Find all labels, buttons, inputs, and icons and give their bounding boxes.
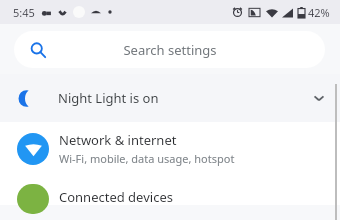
button[interactable]: Connected devices (0, 175, 340, 205)
button[interactable]: Night Light is on (0, 74, 340, 122)
button[interactable]: Search settings (14, 31, 325, 68)
staticText: Search settings (123, 41, 217, 59)
staticText: Wi-Fi, mobile, data usage, hotspot (59, 151, 235, 166)
staticText: Network & internet (59, 131, 177, 149)
other: Expand Night Light (312, 91, 326, 105)
staticText: Night Light is on (58, 89, 159, 107)
staticText: Connected devices (59, 188, 173, 206)
button[interactable]: Network & internet (0, 122, 340, 175)
staticText: 42% (308, 5, 330, 20)
staticText: 5:45 (13, 5, 35, 20)
